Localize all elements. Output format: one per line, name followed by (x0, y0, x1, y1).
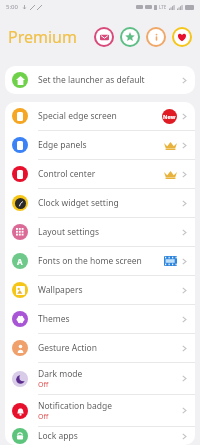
staticText: Premium (8, 26, 77, 48)
button[interactable]: A (5, 247, 195, 275)
button[interactable]: Set the launcher as default (5, 66, 195, 94)
staticText: Fonts on the home screen (38, 255, 142, 267)
staticText: New (163, 113, 176, 120)
staticText: Lock apps (38, 430, 78, 442)
staticText: Notification badge (38, 400, 112, 412)
button[interactable]: Info (146, 27, 166, 47)
staticText: Themes (38, 313, 70, 325)
button[interactable]: Lock apps (5, 427, 195, 445)
staticText: Clock widget setting (38, 197, 119, 209)
staticText: LTE (159, 4, 167, 10)
staticText: Layout settings (38, 226, 99, 238)
button[interactable]: Clock widget setting (5, 189, 195, 217)
button[interactable]: Messages (94, 27, 114, 47)
button[interactable]: Layout settings (5, 218, 195, 246)
button[interactable]: Control center (5, 160, 195, 188)
staticText: Dark mode (38, 368, 83, 380)
staticText: Gesture Action (38, 342, 97, 354)
button[interactable]: Notification badge (5, 395, 195, 426)
staticText: Wallpapers (38, 284, 83, 296)
button[interactable]: Wallpapers (5, 276, 195, 304)
staticText: Special edge screen (38, 110, 117, 122)
button[interactable]: Favourites (172, 27, 192, 47)
staticText: Set the launcher as default (38, 74, 145, 86)
button[interactable]: Special edge screen (5, 102, 195, 130)
button[interactable]: Gesture Action (5, 334, 195, 362)
staticText: Edge panels (38, 139, 87, 151)
button[interactable]: Dark mode (5, 363, 195, 394)
button[interactable]: Rate (120, 27, 140, 47)
button[interactable]: Edge panels (5, 131, 195, 159)
staticText: Off (38, 412, 49, 422)
staticText: Off (38, 380, 49, 390)
staticText: Control center (38, 168, 96, 180)
staticText: A (17, 256, 23, 267)
staticText: 5:00 (6, 3, 18, 11)
button[interactable]: Themes (5, 305, 195, 333)
